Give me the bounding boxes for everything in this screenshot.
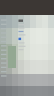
button[interactable]: [1, 23, 6, 25]
button[interactable]: [1, 58, 6, 60]
button[interactable]: [1, 45, 6, 47]
button[interactable]: [1, 71, 6, 73]
button[interactable]: [1, 66, 6, 68]
button[interactable]: [1, 28, 6, 30]
button[interactable]: [1, 40, 6, 43]
button[interactable]: [1, 49, 6, 51]
button[interactable]: [1, 53, 6, 55]
